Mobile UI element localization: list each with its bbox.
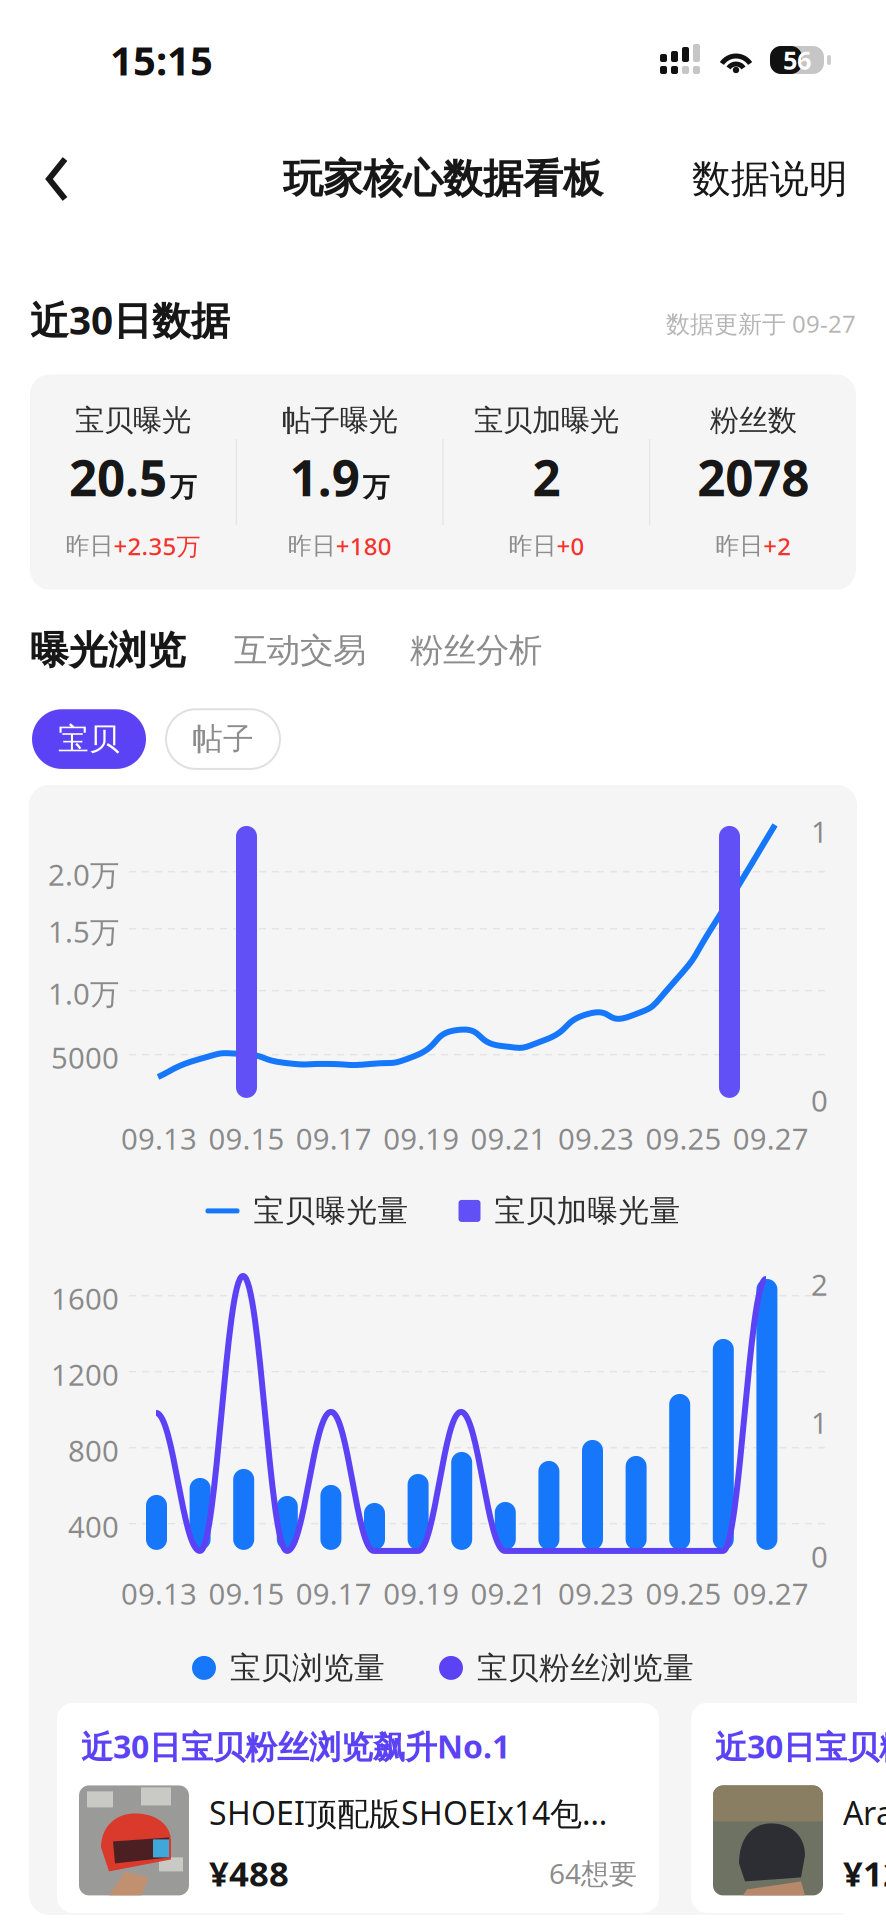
staticText: 1.0万 xyxy=(48,974,119,1013)
staticText: 09.23 xyxy=(558,1574,634,1613)
staticText: 宝贝 xyxy=(58,720,120,758)
staticText: 昨日 xyxy=(288,531,336,561)
staticText: 1600 xyxy=(51,1279,119,1318)
staticText: 09.27 xyxy=(733,1574,809,1613)
staticText: 2078 xyxy=(697,444,809,510)
staticText: 粉丝分析 xyxy=(410,630,542,671)
staticText: 0 xyxy=(811,1081,828,1120)
staticText: 2 xyxy=(811,1265,828,1304)
staticText: 近30日宝贝粉丝浏览飙升No.1 xyxy=(81,1725,510,1767)
staticText: SHOEI顶配版SHOEIx14包… xyxy=(209,1791,607,1834)
staticText: 09.23 xyxy=(558,1119,634,1158)
button[interactable]: 近30日宝贝粉丝浏览飙升No.2 xyxy=(691,1703,886,1913)
staticText: 09.21 xyxy=(471,1119,547,1158)
button[interactable]: 曝光浏览 xyxy=(30,627,186,674)
staticText: 0 xyxy=(811,1537,828,1576)
staticText: 帖子 xyxy=(192,720,254,758)
button[interactable]: 数据说明 xyxy=(678,141,862,217)
staticText: +2.35万 xyxy=(113,530,200,562)
staticText: 2.0万 xyxy=(48,855,119,894)
staticText: +180 xyxy=(336,530,392,562)
staticText: 1 xyxy=(811,1403,828,1442)
staticText: 宝贝浏览量 xyxy=(230,1649,385,1687)
button[interactable]: 近30日宝贝粉丝浏览飙升No.1 xyxy=(57,1703,659,1913)
staticText: 近30日宝贝粉丝浏览飙升No.2 xyxy=(715,1725,886,1767)
staticText: 曝光浏览 xyxy=(30,627,186,674)
button[interactable]: 互动交易 xyxy=(186,630,366,671)
staticText: 宝贝曝光 xyxy=(75,402,191,438)
staticText: 5000 xyxy=(51,1038,119,1077)
staticText: 09.15 xyxy=(208,1574,284,1613)
staticText: 玩家核心数据看板 xyxy=(283,154,603,203)
button[interactable]: Back xyxy=(24,139,92,219)
staticText: 宝贝加曝光 xyxy=(474,402,619,438)
staticText: 万 xyxy=(363,471,390,504)
button[interactable]: 粉丝分析 xyxy=(366,630,542,671)
staticText: 09.13 xyxy=(121,1119,197,1158)
staticText: Arai头盔… xyxy=(843,1791,886,1834)
staticText: 800 xyxy=(68,1431,119,1470)
staticText: 昨日 xyxy=(65,531,113,561)
staticText: 09.15 xyxy=(208,1119,284,1158)
staticText: +2 xyxy=(763,530,791,562)
staticText: 400 xyxy=(68,1507,119,1546)
staticText: 1 xyxy=(811,812,828,851)
staticText: 1200 xyxy=(51,1355,119,1394)
staticText: 09.25 xyxy=(645,1119,721,1158)
staticText: 1.5万 xyxy=(48,912,119,951)
staticText: 09.21 xyxy=(471,1574,547,1613)
staticText: +0 xyxy=(556,530,584,562)
staticText: 09.25 xyxy=(645,1574,721,1613)
staticText: 昨日 xyxy=(508,531,556,561)
staticText: 56 xyxy=(783,43,811,77)
staticText: 1.9 xyxy=(290,444,360,510)
staticText: 09.17 xyxy=(296,1574,372,1613)
staticText: 64想要 xyxy=(549,1854,637,1892)
staticText: ¥488 xyxy=(209,1850,289,1896)
staticText: 09.19 xyxy=(383,1119,459,1158)
staticText: 宝贝加曝光量 xyxy=(494,1192,680,1230)
staticText: 昨日 xyxy=(715,531,763,561)
staticText: 万 xyxy=(170,471,197,504)
staticText: 09.13 xyxy=(121,1574,197,1613)
staticText: 2 xyxy=(532,444,560,510)
staticText: 09.17 xyxy=(296,1119,372,1158)
staticText: 09.27 xyxy=(733,1119,809,1158)
button[interactable]: 帖子 xyxy=(166,709,280,769)
staticText: 近30日数据 xyxy=(30,294,230,345)
staticText: 帖子曝光 xyxy=(282,402,398,438)
staticText: 宝贝曝光量 xyxy=(253,1192,408,1230)
staticText: 互动交易 xyxy=(234,630,366,671)
staticText: 09.19 xyxy=(383,1574,459,1613)
staticText: 宝贝粉丝浏览量 xyxy=(477,1649,694,1687)
staticText: 20.5 xyxy=(69,444,167,510)
staticText: 15:15 xyxy=(110,33,213,86)
staticText: 数据更新于 09-27 xyxy=(666,307,856,339)
staticText: 粉丝数 xyxy=(710,402,797,438)
staticText: ¥1280 xyxy=(843,1850,886,1896)
button[interactable]: 宝贝 xyxy=(32,709,146,769)
staticText: 数据说明 xyxy=(692,155,848,203)
